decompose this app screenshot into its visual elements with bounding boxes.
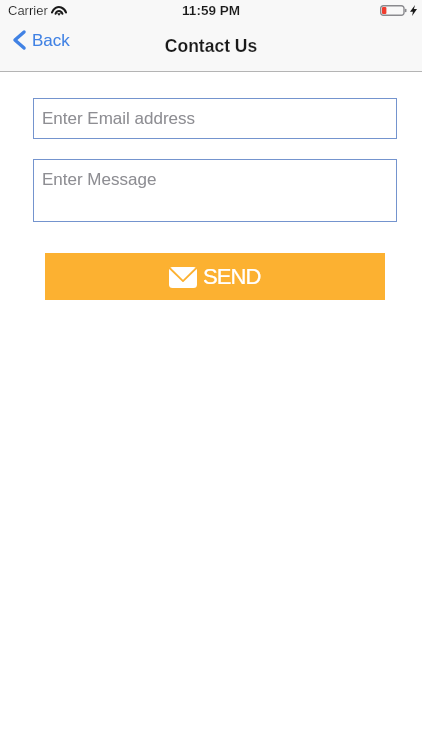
button[interactable]: Enter Email address xyxy=(33,98,397,139)
staticText: Contact Us xyxy=(0,36,422,56)
staticText: 11:59 PM xyxy=(0,3,422,18)
staticText: Back xyxy=(32,31,70,50)
button[interactable]: Back xyxy=(13,30,70,50)
button[interactable]: Send message xyxy=(45,253,385,300)
staticText: SEND xyxy=(203,264,261,289)
button[interactable]: Enter Message xyxy=(33,159,397,222)
staticText: Enter Message xyxy=(42,170,157,189)
staticText: Carrier xyxy=(8,3,48,18)
staticText: Enter Email address xyxy=(42,109,196,128)
